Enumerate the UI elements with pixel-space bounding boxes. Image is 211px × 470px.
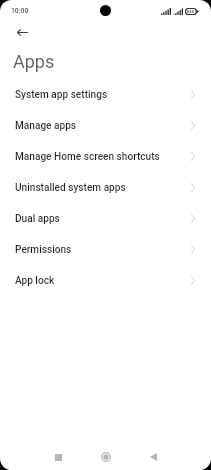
staticText: Apps — [13, 51, 55, 72]
staticText: Uninstalled system apps — [15, 182, 126, 194]
button[interactable]: Manage apps — [0, 110, 211, 141]
staticText: Permissions — [15, 244, 72, 256]
button[interactable]: Recents — [43, 442, 73, 470]
staticText: Dual apps — [15, 213, 60, 225]
button[interactable]: Home — [91, 442, 121, 470]
staticText: 10:00 — [11, 7, 29, 15]
staticText: Manage Home screen shortcuts — [15, 151, 160, 163]
button[interactable]: Uninstalled system apps — [0, 172, 211, 203]
button[interactable]: System app settings — [0, 79, 211, 110]
staticText: App lock — [15, 275, 55, 287]
button[interactable]: App lock — [0, 265, 211, 296]
staticText: Manage apps — [15, 120, 77, 132]
button[interactable]: Back — [5, 16, 39, 50]
button[interactable]: Back — [138, 442, 168, 470]
button[interactable]: Permissions — [0, 234, 211, 265]
button[interactable]: Dual apps — [0, 203, 211, 234]
staticText: System app settings — [15, 89, 108, 101]
button[interactable]: Manage Home screen shortcuts — [0, 141, 211, 172]
